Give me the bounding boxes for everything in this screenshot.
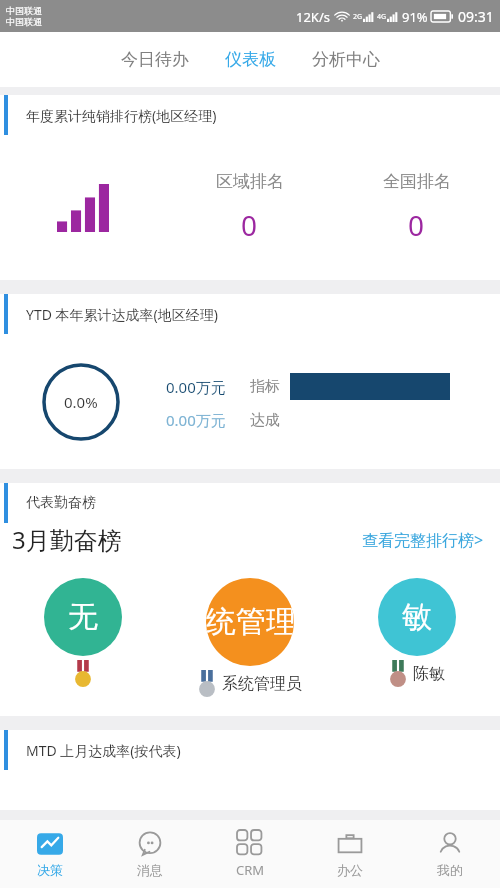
staticText: YTD 本年累计达成率(地区经理): [26, 305, 218, 324]
button[interactable]: 今日待办: [115, 41, 195, 78]
staticText: 全国排名: [383, 171, 451, 192]
button[interactable]: 仪表板: [219, 41, 282, 78]
staticText: 0: [408, 206, 425, 244]
staticText: 91%: [402, 8, 428, 26]
staticText: 2G: [353, 12, 363, 22]
button[interactable]: 查看完整排行榜>: [358, 525, 488, 555]
button[interactable]: YTD 本年累计达成率(地区经理): [0, 294, 500, 469]
button[interactable]: 办公: [300, 820, 400, 888]
staticText: 12K/s: [296, 8, 330, 26]
staticText: 办公: [337, 862, 363, 878]
staticText: 我的: [437, 862, 463, 878]
staticText: 09:31: [458, 7, 494, 26]
staticText: 0.0%: [64, 392, 98, 412]
staticText: MTD 上月达成率(按代表): [26, 741, 181, 760]
staticText: 4G: [377, 12, 387, 22]
button[interactable]: 统管理: [166, 578, 333, 698]
staticText: CRM: [236, 861, 265, 879]
button[interactable]: 分析中心: [306, 41, 386, 78]
staticText: 决策: [37, 862, 63, 878]
button[interactable]: CRM: [200, 820, 300, 888]
button[interactable]: 消息: [100, 820, 200, 888]
staticText: 0: [241, 206, 258, 244]
staticText: 区域排名: [216, 171, 284, 192]
staticText: 陈敏: [413, 664, 445, 684]
staticText: 无: [68, 598, 98, 636]
staticText: 达成: [250, 411, 280, 430]
staticText: 仪表板: [225, 49, 276, 70]
button[interactable]: 敏: [333, 578, 500, 688]
button[interactable]: 年度累计纯销排行榜(地区经理): [0, 95, 500, 280]
staticText: 消息: [137, 862, 163, 878]
staticText: 年度累计纯销排行榜(地区经理): [26, 106, 217, 125]
staticText: 中国联通: [6, 5, 42, 16]
staticText: 中国联通: [6, 16, 42, 27]
staticText: 统管理: [206, 603, 294, 641]
staticText: 0.00万元: [166, 410, 226, 430]
staticText: 0.00万元: [166, 377, 226, 397]
staticText: 敏: [402, 598, 432, 636]
button[interactable]: 决策: [0, 820, 100, 888]
staticText: 代表勤奋榜: [26, 494, 96, 512]
staticText: 查看完整排行榜>: [362, 529, 484, 551]
staticText: 今日待办: [121, 49, 189, 70]
button[interactable]: MTD 上月达成率(按代表): [0, 730, 500, 810]
staticText: 指标: [250, 377, 280, 396]
staticText: 分析中心: [312, 49, 380, 70]
button[interactable]: 无: [0, 578, 166, 688]
staticText: 3月勤奋榜: [12, 523, 122, 556]
staticText: 系统管理员: [222, 674, 302, 694]
button[interactable]: 我的: [400, 820, 500, 888]
